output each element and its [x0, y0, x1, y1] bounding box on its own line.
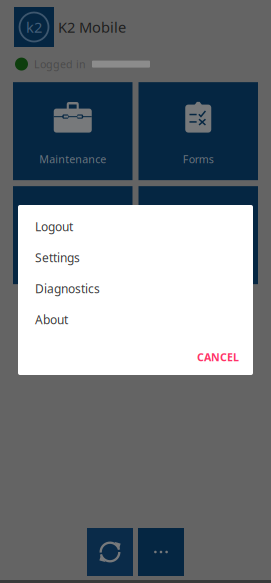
- staticText: Settings: [35, 249, 80, 265]
- staticText: Forms: [183, 152, 214, 166]
- button[interactable]: CANCEL: [183, 342, 253, 372]
- button[interactable]: [138, 186, 258, 284]
- staticText: About: [35, 311, 68, 327]
- staticText: Logout: [35, 218, 73, 234]
- button[interactable]: More: [138, 528, 184, 576]
- button[interactable]: About: [18, 304, 253, 335]
- button[interactable]: Forms: [138, 82, 258, 180]
- button[interactable]: Diagnostics: [18, 273, 253, 304]
- button[interactable]: [13, 186, 132, 284]
- button[interactable]: Settings: [18, 242, 253, 273]
- button[interactable]: Maintenance: [13, 82, 132, 180]
- staticText: K2 Mobile: [58, 17, 126, 37]
- staticText: CANCEL: [197, 350, 239, 364]
- staticText: Maintenance: [39, 152, 106, 166]
- button[interactable]: Sync: [87, 528, 133, 576]
- button[interactable]: Logout: [18, 211, 253, 242]
- staticText: k2: [26, 17, 42, 37]
- staticText: Diagnostics: [35, 280, 100, 296]
- staticText: Logged in: [34, 57, 86, 71]
